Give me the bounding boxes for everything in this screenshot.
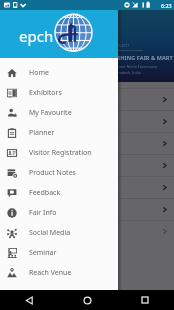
staticText: Home bbox=[29, 68, 49, 78]
button[interactable]: Visitor Registration bbox=[0, 143, 118, 163]
button[interactable] bbox=[0, 221, 174, 242]
button[interactable]: Home bbox=[58, 290, 116, 310]
staticText: IHGF DELHI FAIR SPRING 2017 bbox=[81, 43, 130, 48]
button[interactable]: Exhibitors bbox=[0, 83, 118, 103]
button[interactable] bbox=[0, 177, 174, 198]
staticText: Exhibitors bbox=[29, 88, 62, 98]
staticText: Feedback bbox=[29, 188, 61, 198]
staticText: 6:23 bbox=[161, 2, 172, 9]
button[interactable]: Planner bbox=[0, 123, 118, 143]
staticText: Fair Info bbox=[29, 208, 57, 218]
button[interactable]: My Favourite bbox=[0, 103, 118, 123]
staticText: Product Notes bbox=[29, 168, 76, 178]
staticText: epch bbox=[19, 26, 54, 46]
button[interactable]: Fair Info bbox=[0, 203, 118, 223]
button[interactable]: Social Media bbox=[0, 223, 118, 243]
staticText: Planner bbox=[29, 128, 55, 138]
button[interactable]: Product Notes bbox=[0, 163, 118, 183]
staticText: Seminar bbox=[29, 248, 57, 258]
staticText: Social Media bbox=[29, 228, 71, 238]
button[interactable]: Feedback bbox=[0, 183, 118, 203]
button[interactable] bbox=[0, 111, 174, 132]
staticText: India Expo Centre, Greater Noida Express… bbox=[81, 64, 158, 69]
staticText: HOME FURNISHING FAIR & MART bbox=[81, 54, 173, 62]
staticText: Greater Noida, Uttar Pradesh, India bbox=[81, 70, 141, 75]
button[interactable]: Recents bbox=[116, 290, 174, 310]
button[interactable]: Home bbox=[0, 63, 118, 83]
button[interactable]: Reach Venue bbox=[0, 263, 118, 283]
button[interactable] bbox=[0, 155, 174, 176]
staticText: My Favourite bbox=[29, 108, 72, 118]
button[interactable] bbox=[0, 133, 174, 154]
staticText: Reach Venue bbox=[29, 268, 72, 278]
staticText: Visitor Registration bbox=[29, 148, 92, 158]
button[interactable]: Seminar bbox=[0, 243, 118, 263]
button[interactable]: Back bbox=[0, 290, 58, 310]
button[interactable] bbox=[0, 199, 174, 220]
button[interactable] bbox=[0, 89, 174, 110]
